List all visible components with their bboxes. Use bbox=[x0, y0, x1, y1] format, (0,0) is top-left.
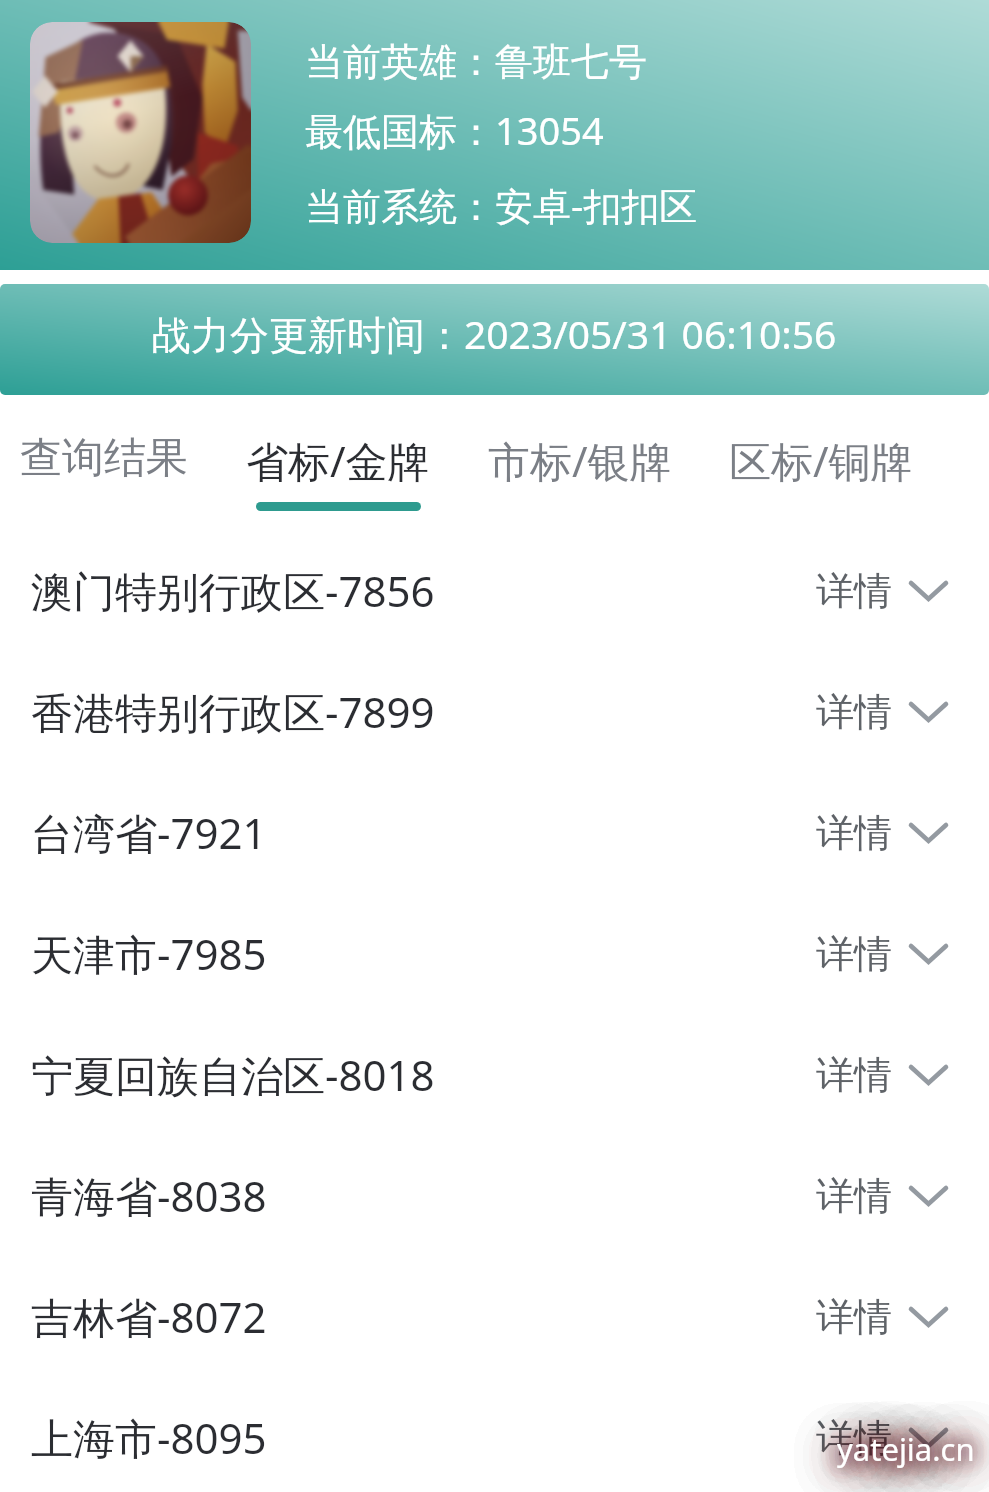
staticText: 省标/金牌 bbox=[246, 432, 430, 489]
button[interactable]: 查询结果 bbox=[20, 432, 188, 507]
button[interactable]: 省标/金牌 bbox=[246, 432, 430, 511]
staticText: 当前系统：安卓-扣扣区 bbox=[305, 179, 698, 231]
staticText: 香港特别行政区-7899 bbox=[31, 683, 435, 740]
staticText: 详情 bbox=[816, 930, 892, 978]
staticText: 市标/银牌 bbox=[488, 432, 672, 489]
staticText: 天津市-7985 bbox=[31, 925, 267, 982]
staticText: 澳门特别行政区-7856 bbox=[31, 562, 435, 619]
button[interactable]: 台湾省-7921 bbox=[0, 772, 989, 893]
other: Expand details bbox=[909, 822, 948, 844]
button[interactable]: 吉林省-8072 bbox=[0, 1256, 989, 1377]
other: Expand details bbox=[909, 1427, 948, 1449]
staticText: yatejia.cn bbox=[837, 1428, 975, 1470]
staticText: 青海省-8038 bbox=[31, 1167, 267, 1224]
staticText: 详情 bbox=[816, 567, 892, 615]
staticText: 台湾省-7921 bbox=[31, 804, 267, 861]
staticText: yatejia.cn bbox=[837, 1428, 975, 1470]
other: Expand details bbox=[909, 943, 948, 965]
staticText: 详情 bbox=[816, 809, 892, 857]
staticText: 详情 bbox=[816, 688, 892, 736]
staticText: yatejia.cn bbox=[837, 1428, 975, 1470]
staticText: 详情 bbox=[816, 1293, 892, 1341]
staticText: 战力分更新时间：2023/05/31 06:10:56 bbox=[152, 307, 837, 360]
staticText: 上海市-8095 bbox=[31, 1409, 267, 1466]
staticText: 查询结果 bbox=[20, 432, 188, 485]
other: Expand details bbox=[909, 701, 948, 723]
staticText: yatejia.cn bbox=[837, 1428, 975, 1470]
staticText: yatejia.cn bbox=[837, 1428, 975, 1470]
staticText: 吉林省-8072 bbox=[31, 1288, 267, 1345]
staticText: 详情 bbox=[816, 1172, 892, 1220]
staticText: yatejia.cn bbox=[837, 1428, 975, 1470]
staticText: 区标/铜牌 bbox=[729, 432, 913, 489]
staticText: 详情 bbox=[816, 1051, 892, 1099]
other: Expand details bbox=[909, 580, 948, 602]
staticText: yatejia.cn bbox=[837, 1428, 975, 1470]
button[interactable]: 澳门特别行政区-7856 bbox=[0, 530, 989, 651]
button[interactable]: 宁夏回族自治区-8018 bbox=[0, 1014, 989, 1135]
button[interactable]: 区标/铜牌 bbox=[729, 432, 913, 511]
other: Expand details bbox=[909, 1185, 948, 1207]
staticText: 详情 bbox=[816, 1414, 892, 1462]
button[interactable]: 上海市-8095 bbox=[0, 1377, 989, 1492]
button[interactable]: 天津市-7985 bbox=[0, 893, 989, 1014]
button[interactable]: 青海省-8038 bbox=[0, 1135, 989, 1256]
button[interactable]: 市标/银牌 bbox=[488, 432, 672, 511]
other: Expand details bbox=[909, 1306, 948, 1328]
staticText: 宁夏回族自治区-8018 bbox=[31, 1046, 435, 1103]
staticText: 最低国标：13054 bbox=[305, 104, 604, 156]
other: Expand details bbox=[909, 1064, 948, 1086]
button[interactable]: 香港特别行政区-7899 bbox=[0, 651, 989, 772]
staticText: 当前英雄：鲁班七号 bbox=[305, 38, 647, 86]
